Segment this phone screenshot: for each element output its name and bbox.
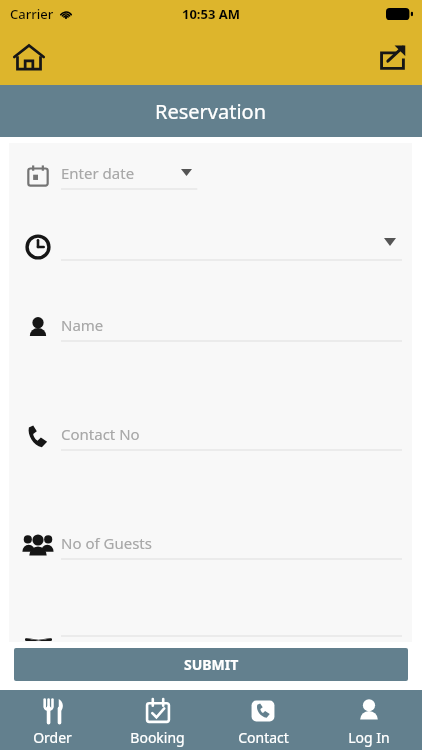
staticText: No of Guests xyxy=(61,533,152,553)
staticText: Name xyxy=(61,315,104,335)
staticText: Contact xyxy=(238,728,289,747)
staticText: SUBMIT xyxy=(184,655,239,674)
button[interactable]: Name xyxy=(9,309,412,347)
staticText: Carrier xyxy=(10,5,54,23)
button[interactable]: Enter date xyxy=(9,157,412,195)
button[interactable]: Contact No xyxy=(9,418,412,456)
button[interactable]: Contact xyxy=(210,690,316,750)
staticText: Order xyxy=(33,728,72,747)
button[interactable]: Share xyxy=(372,36,414,78)
button[interactable]: Booking xyxy=(105,690,210,750)
button[interactable]: Log In xyxy=(316,690,422,750)
button[interactable]: No of Guests xyxy=(9,527,412,565)
button[interactable] xyxy=(9,228,412,266)
staticText: Booking xyxy=(130,728,185,747)
staticText: Contact No xyxy=(61,424,140,444)
staticText: Enter date xyxy=(61,163,135,183)
staticText: Reservation xyxy=(155,98,267,125)
button[interactable]: Home xyxy=(8,36,50,78)
staticText: Log In xyxy=(348,728,390,747)
button[interactable]: Order xyxy=(0,690,105,750)
staticText: 10:53 AM xyxy=(182,5,241,23)
button[interactable]: Email xyxy=(9,637,412,642)
button[interactable]: SUBMIT xyxy=(14,648,408,681)
